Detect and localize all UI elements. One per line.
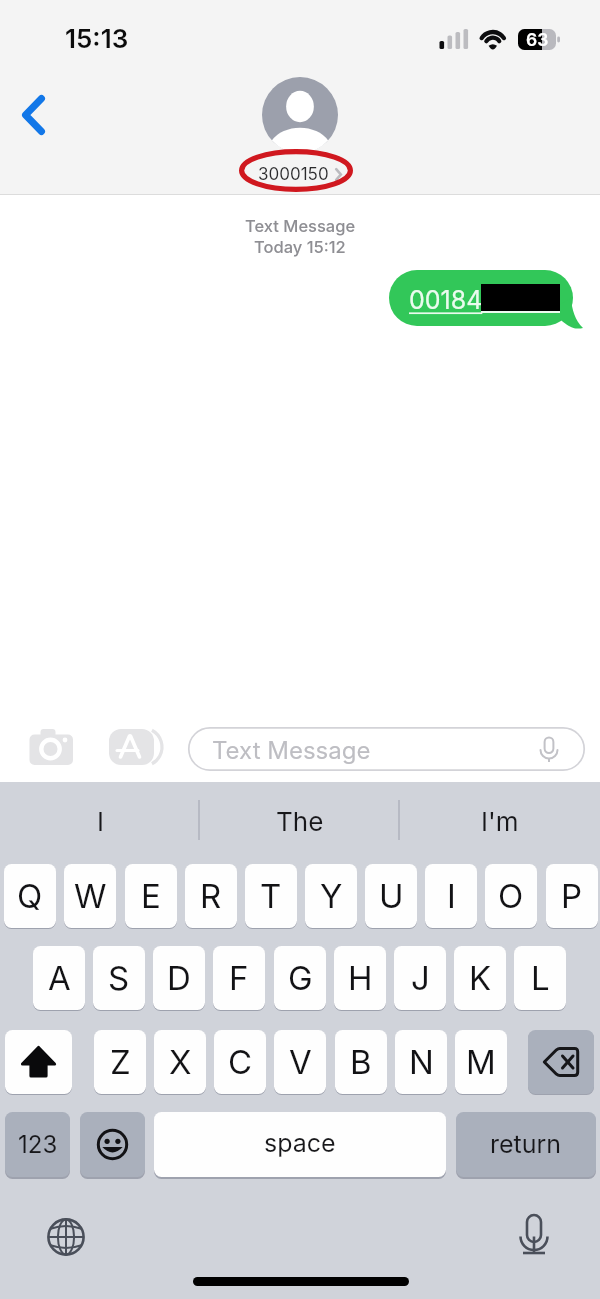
- button[interactable]: O: [485, 864, 537, 928]
- button[interactable]: Text Message: [188, 727, 585, 771]
- staticText: The: [276, 806, 324, 837]
- staticText: 15:13: [65, 23, 129, 54]
- button[interactable]: Backspace: [528, 1030, 594, 1094]
- staticText: U: [379, 876, 404, 916]
- staticText: 123: [18, 1130, 58, 1159]
- button[interactable]: I: [0, 782, 200, 860]
- button[interactable]: D: [153, 946, 205, 1010]
- button[interactable]: N: [395, 1030, 447, 1094]
- button[interactable]: V: [274, 1030, 326, 1094]
- staticText: 00184: [409, 285, 483, 315]
- staticText: R: [200, 876, 222, 916]
- button[interactable]: J: [394, 946, 446, 1010]
- button[interactable]: I: [425, 864, 477, 928]
- staticText: C: [228, 1042, 253, 1082]
- staticText: T: [260, 876, 282, 916]
- button[interactable]: L: [514, 946, 566, 1010]
- button[interactable]: space: [154, 1112, 446, 1177]
- button[interactable]: Apps: [100, 722, 164, 772]
- button[interactable]: E: [125, 864, 177, 928]
- staticText: B: [350, 1042, 372, 1082]
- button[interactable]: Dictation: [509, 1210, 559, 1262]
- button[interactable]: H: [334, 946, 386, 1010]
- button[interactable]: return: [456, 1112, 596, 1177]
- button[interactable]: Q: [4, 864, 56, 928]
- staticText: Q: [17, 876, 43, 916]
- button[interactable]: U: [365, 864, 417, 928]
- staticText: Y: [320, 876, 343, 916]
- button[interactable]: Y: [305, 864, 357, 928]
- staticText: Text Message: [212, 736, 371, 765]
- button[interactable]: F: [213, 946, 265, 1010]
- staticText: X: [169, 1042, 192, 1082]
- button[interactable]: R: [185, 864, 237, 928]
- staticText: M: [466, 1042, 496, 1082]
- button[interactable]: P: [546, 864, 598, 928]
- button[interactable]: T: [245, 864, 297, 928]
- staticText: V: [289, 1042, 312, 1082]
- button[interactable]: M: [455, 1030, 507, 1094]
- staticText: E: [141, 876, 161, 916]
- staticText: Text Message: [245, 216, 356, 236]
- staticText: I'm: [481, 806, 519, 837]
- staticText: return: [490, 1129, 562, 1159]
- staticText: O: [498, 876, 524, 916]
- staticText: L: [531, 958, 550, 998]
- staticText: I: [97, 806, 104, 837]
- button[interactable]: Change keyboard: [41, 1212, 91, 1262]
- button[interactable]: Z: [94, 1030, 146, 1094]
- staticText: D: [167, 958, 191, 998]
- staticText: I: [447, 876, 456, 916]
- button[interactable]: G: [274, 946, 326, 1010]
- button[interactable]: A: [33, 946, 85, 1010]
- staticText: A: [48, 958, 71, 998]
- staticText: Z: [110, 1042, 131, 1082]
- button[interactable]: 3000150: [232, 77, 368, 189]
- staticText: H: [348, 958, 373, 998]
- staticText: S: [108, 958, 130, 998]
- button[interactable]: Shift: [5, 1030, 72, 1094]
- button[interactable]: I'm: [400, 782, 600, 860]
- staticText: F: [229, 958, 249, 998]
- button[interactable]: 123: [5, 1112, 70, 1177]
- button[interactable]: S: [93, 946, 145, 1010]
- button[interactable]: K: [454, 946, 506, 1010]
- button[interactable]: B: [335, 1030, 387, 1094]
- staticText: 3000150: [258, 164, 329, 185]
- button[interactable]: The: [200, 782, 400, 860]
- staticText: 63: [526, 29, 549, 50]
- button[interactable]: Camera: [20, 726, 84, 772]
- button[interactable]: W: [64, 864, 116, 928]
- staticText: space: [264, 1128, 336, 1158]
- staticText: Today 15:12: [254, 237, 346, 257]
- button[interactable]: C: [214, 1030, 266, 1094]
- staticText: N: [409, 1042, 434, 1082]
- staticText: P: [561, 876, 583, 916]
- button[interactable]: X: [154, 1030, 206, 1094]
- button[interactable]: Back: [4, 95, 62, 135]
- staticText: W: [74, 876, 107, 916]
- button[interactable]: Emoji: [80, 1112, 145, 1177]
- staticText: G: [288, 958, 313, 998]
- staticText: J: [411, 958, 430, 998]
- staticText: K: [469, 958, 492, 998]
